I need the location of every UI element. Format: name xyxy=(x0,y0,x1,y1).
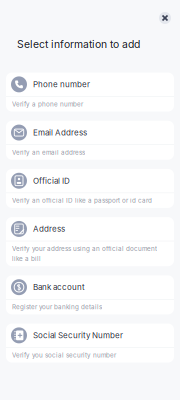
button[interactable]: Phone number xyxy=(6,73,174,112)
button[interactable]: Email Address xyxy=(6,121,174,160)
button[interactable]: Close xyxy=(159,12,171,24)
staticText: Verify an official ID like a passport or… xyxy=(12,197,152,204)
staticText: Email Address xyxy=(33,128,87,137)
staticText: Verify a phone number xyxy=(12,100,83,108)
staticText: Register your banking details xyxy=(12,303,102,311)
staticText: Bank account xyxy=(33,282,85,292)
staticText: Address xyxy=(33,224,65,234)
staticText: Social Security Number xyxy=(33,330,123,340)
button[interactable]: Official ID xyxy=(6,169,174,208)
staticText: Official ID xyxy=(33,176,70,186)
button[interactable]: Social Security Number xyxy=(6,324,174,363)
staticText: Verify you social security number xyxy=(12,351,116,359)
button[interactable]: Address xyxy=(6,217,174,266)
staticText: Select information to add xyxy=(17,38,140,51)
staticText: Verify your address using an official do… xyxy=(12,245,157,263)
button[interactable]: Bank account xyxy=(6,275,174,314)
staticText: Phone number xyxy=(33,79,90,89)
staticText: Verify an email address xyxy=(12,149,85,156)
